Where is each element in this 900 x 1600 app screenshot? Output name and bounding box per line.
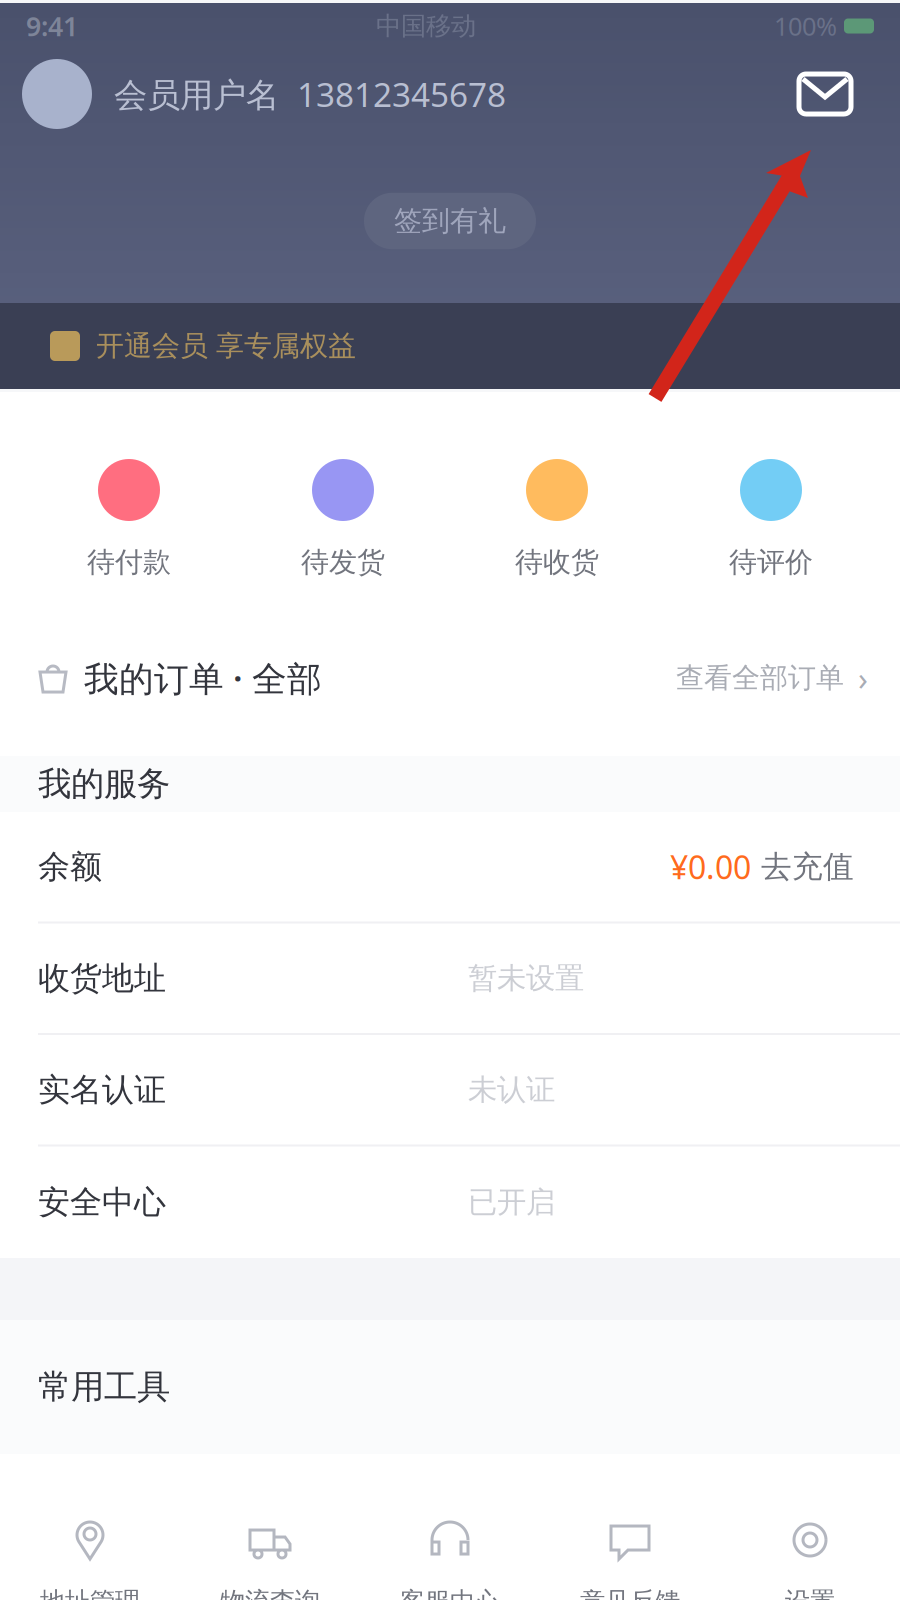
button[interactable]: 物流查询 (180, 1454, 360, 1600)
staticText: 待付款 (87, 545, 171, 579)
button[interactable]: 会员用户名 13812345678 (22, 59, 506, 129)
staticText: 查看全部订单 (676, 661, 844, 695)
staticText: 暂未设置 (468, 960, 584, 996)
staticText: 9:41 (26, 8, 78, 44)
button[interactable]: 待评价 (664, 392, 878, 600)
button[interactable]: 地址管理 (0, 1454, 180, 1600)
staticText: 待收货 (515, 545, 599, 579)
button[interactable]: 待发货 (236, 392, 450, 600)
button[interactable]: 待收货 (450, 392, 664, 600)
button[interactable]: 设置 (720, 1454, 900, 1600)
staticText: 物流查询 (220, 1586, 320, 1600)
staticText: 我的订单 · 全部 (84, 655, 322, 701)
button[interactable]: 意见反馈 (540, 1454, 720, 1600)
staticText: › (858, 657, 868, 699)
staticText: 待发货 (301, 545, 385, 579)
staticText: 设置 (785, 1586, 835, 1600)
staticText: 客服中心 (400, 1586, 500, 1600)
staticText: 我的服务 (38, 763, 170, 804)
button[interactable]: 实名认证 (0, 1035, 900, 1146)
staticText: 开通会员 享专属权益 (96, 329, 356, 363)
staticText: 实名认证 (38, 1070, 166, 1109)
staticText: 签到有礼 (394, 204, 506, 238)
staticText: 中国移动 (376, 10, 476, 41)
button[interactable]: 我的订单 · 全部 (0, 600, 900, 756)
staticText: 待评价 (729, 545, 813, 579)
button[interactable]: 客服中心 (360, 1454, 540, 1600)
button[interactable]: 收货地址 (0, 923, 900, 1035)
button[interactable]: 待付款 (22, 392, 236, 600)
staticText: 去充值 (761, 848, 854, 886)
staticText: 100% (774, 9, 837, 43)
staticText: 未认证 (468, 1072, 555, 1108)
staticText: 地址管理 (40, 1586, 140, 1600)
staticText: 会员用户名 13812345678 (114, 72, 506, 116)
button[interactable]: 签到有礼 (364, 193, 536, 249)
button[interactable]: Messages (791, 65, 859, 123)
button[interactable]: 安全中心 (0, 1146, 900, 1258)
button[interactable]: 余额 (0, 812, 900, 923)
staticText: 意见反馈 (580, 1586, 680, 1600)
staticText: 已开启 (468, 1184, 555, 1220)
staticText: 安全中心 (38, 1183, 166, 1222)
staticText: 常用工具 (38, 1366, 170, 1407)
staticText: ¥0.00 (670, 845, 751, 888)
button[interactable]: 开通会员 享专属权益 (0, 303, 900, 389)
staticText: 余额 (38, 847, 102, 886)
staticText: 收货地址 (38, 959, 166, 998)
